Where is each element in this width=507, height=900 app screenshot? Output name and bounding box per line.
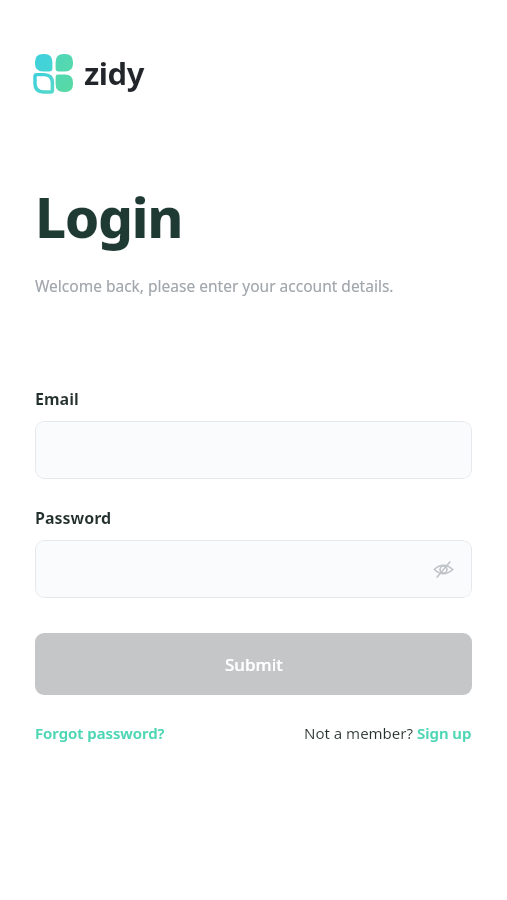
button[interactable]: Sign up (417, 723, 472, 743)
staticText: Sign up (417, 723, 472, 743)
button[interactable]: Show password (35, 540, 472, 598)
staticText: Login (35, 179, 182, 254)
button[interactable]: Submit (35, 633, 472, 695)
button[interactable] (35, 421, 472, 479)
staticText: Not a member? (304, 723, 417, 743)
staticText: Email (35, 388, 79, 410)
staticText: zidy (84, 52, 144, 94)
staticText: Password (35, 507, 112, 529)
button[interactable]: Forgot password? (35, 723, 165, 743)
staticText: Forgot password? (35, 723, 165, 743)
button[interactable]: Show password (428, 554, 458, 584)
staticText: Submit (225, 653, 283, 676)
staticText: Welcome back, please enter your account … (35, 275, 394, 296)
